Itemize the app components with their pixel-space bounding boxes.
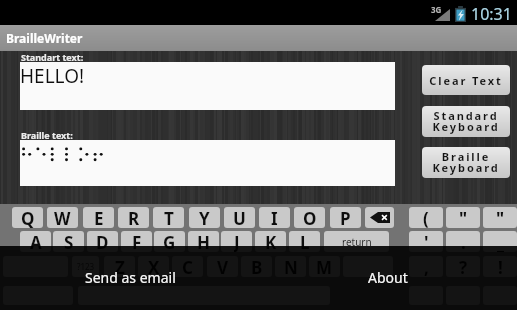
staticText: Send as email xyxy=(85,268,176,287)
button[interactable]: X xyxy=(138,256,169,277)
staticText: G xyxy=(163,231,176,252)
button[interactable]: Braille Keyboard xyxy=(422,147,510,178)
button[interactable]: V xyxy=(207,256,238,277)
button[interactable]: T xyxy=(153,207,184,228)
button[interactable]: R xyxy=(118,207,149,228)
button[interactable]: D xyxy=(87,231,118,252)
staticText: Clear Text xyxy=(429,73,503,88)
button[interactable]: Z xyxy=(104,256,135,277)
button[interactable]: Backspace xyxy=(365,207,394,228)
staticText: Braille Keyboard xyxy=(432,149,500,176)
button[interactable]: . xyxy=(446,231,480,252)
staticText: F xyxy=(132,231,142,252)
button[interactable]: P xyxy=(330,207,361,228)
staticText: " xyxy=(459,207,468,228)
button[interactable]: I xyxy=(259,207,290,228)
button[interactable]: E xyxy=(83,207,114,228)
staticText: M xyxy=(316,256,333,277)
button[interactable]: _ xyxy=(483,231,517,252)
staticText: C xyxy=(182,256,193,277)
button[interactable]: About xyxy=(340,267,435,288)
staticText: O xyxy=(303,207,317,228)
staticText: W xyxy=(54,207,71,228)
button[interactable]: " xyxy=(483,207,517,228)
button[interactable]: return xyxy=(324,231,389,252)
staticText: N xyxy=(284,256,298,277)
button[interactable]: Y xyxy=(189,207,220,228)
button[interactable]: ?123 xyxy=(72,256,99,277)
staticText: ?123 xyxy=(77,261,95,272)
button[interactable]: " xyxy=(446,207,480,228)
staticText: ' xyxy=(424,231,429,252)
button[interactable] xyxy=(343,256,393,277)
staticText: X xyxy=(148,256,160,277)
staticText: L xyxy=(300,231,310,252)
staticText: K xyxy=(265,231,277,252)
button[interactable]: U xyxy=(224,207,255,228)
staticText: Standart text: xyxy=(21,51,84,63)
staticText: U xyxy=(233,207,246,228)
button[interactable]: Q xyxy=(12,207,43,228)
staticText: ? xyxy=(459,256,468,277)
staticText: Y xyxy=(199,207,210,228)
staticText: Q xyxy=(21,207,35,228)
staticText: . xyxy=(461,231,466,252)
button[interactable]: Send as email xyxy=(36,267,225,288)
button[interactable]: M xyxy=(309,256,340,277)
staticText: I xyxy=(271,207,278,228)
staticText: H xyxy=(197,231,211,252)
staticText: _ xyxy=(497,231,504,252)
staticText: J xyxy=(234,231,240,252)
staticText: return xyxy=(342,235,372,249)
staticText: S xyxy=(64,231,74,252)
button[interactable]: G xyxy=(154,231,185,252)
button[interactable]: J xyxy=(221,231,252,252)
staticText: B xyxy=(251,256,263,277)
button[interactable]: O xyxy=(294,207,325,228)
button[interactable]: ? xyxy=(446,256,480,277)
button[interactable]: A xyxy=(20,231,51,252)
staticText: 3G xyxy=(431,4,442,15)
button[interactable]: F xyxy=(121,231,152,252)
button[interactable]: ( xyxy=(409,207,443,228)
staticText: 10:31 xyxy=(471,3,512,25)
button[interactable]: ' xyxy=(409,231,443,252)
button[interactable]: C xyxy=(172,256,203,277)
staticText: D xyxy=(96,231,109,252)
staticText: About xyxy=(368,268,408,287)
staticText: Standard Keyboard xyxy=(432,108,500,135)
button[interactable]: Standard Keyboard xyxy=(422,106,510,137)
staticText: ( xyxy=(423,207,429,228)
button[interactable]: S xyxy=(53,231,84,252)
button[interactable]: Clear Text xyxy=(422,65,510,95)
button[interactable]: W xyxy=(47,207,78,228)
staticText: HELLO! xyxy=(20,63,85,89)
staticText: P xyxy=(340,207,351,228)
staticText: R xyxy=(128,207,140,228)
staticText: " xyxy=(496,207,505,228)
button[interactable]: K xyxy=(255,231,286,252)
button[interactable]: B xyxy=(241,256,272,277)
staticText: A xyxy=(30,231,42,252)
staticText: BrailleWriter xyxy=(6,30,83,46)
button[interactable]: H xyxy=(188,231,219,252)
staticText: , xyxy=(424,256,429,277)
staticText: T xyxy=(164,207,174,228)
button[interactable]: L xyxy=(289,231,320,252)
staticText: ! xyxy=(498,256,503,277)
staticText: E xyxy=(94,207,104,228)
button[interactable]: N xyxy=(275,256,306,277)
staticText: V xyxy=(217,256,229,277)
staticText: Z xyxy=(115,256,125,277)
staticText: Braille text: xyxy=(21,129,73,141)
button[interactable]: ! xyxy=(483,256,517,277)
